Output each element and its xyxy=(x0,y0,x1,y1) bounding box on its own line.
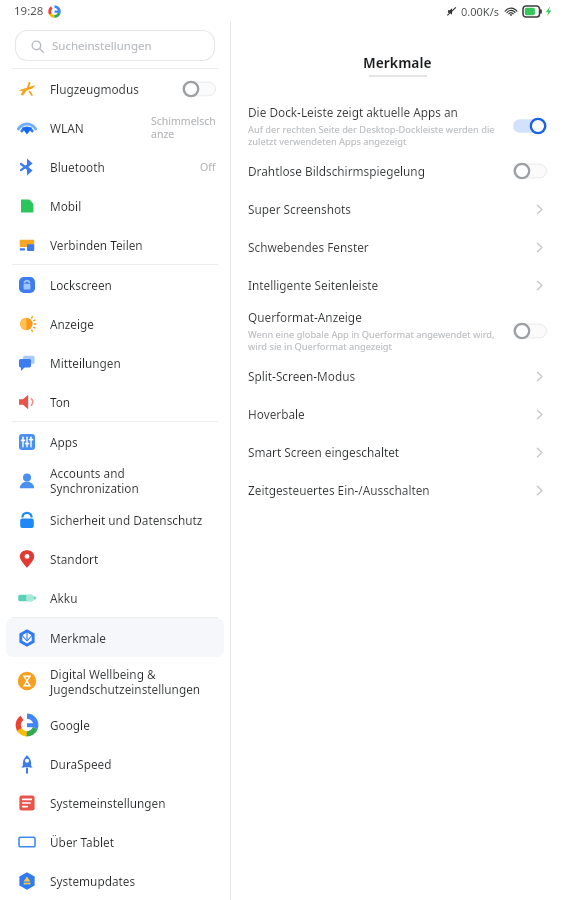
other: Open xyxy=(532,202,547,217)
staticText: Hoverbale xyxy=(248,406,305,422)
staticText: Merkmale xyxy=(50,630,106,646)
button[interactable]: Apps xyxy=(6,422,224,461)
staticText: Accounts and Synchronization xyxy=(50,465,216,496)
button[interactable]: Super Screenshots xyxy=(231,190,563,228)
staticText: Flugzeugmodus xyxy=(50,81,139,97)
button[interactable]: Flugzeugmodus xyxy=(6,69,224,108)
button[interactable]: Systemupdates xyxy=(6,861,224,900)
button[interactable]: Mobil xyxy=(6,186,224,225)
button[interactable]: WLAN xyxy=(6,108,224,147)
button[interactable]: Hoverbale xyxy=(231,395,563,433)
button[interactable]: Standort xyxy=(6,539,224,578)
staticText: Akku xyxy=(50,590,78,606)
staticText: WLAN xyxy=(50,120,84,136)
staticText: Sucheinstellungen xyxy=(52,38,152,54)
other: Open xyxy=(532,240,547,255)
button[interactable]: DuraSpeed xyxy=(6,744,224,783)
staticText: Ton xyxy=(50,394,71,410)
staticText: DuraSpeed xyxy=(50,756,112,772)
staticText: Sicherheit und Datenschutz xyxy=(50,512,203,528)
staticText: Mobil xyxy=(50,198,82,214)
staticText: Drahtlose Bildschirmspiegelung xyxy=(248,163,425,179)
staticText: Querformat-Anzeige xyxy=(248,309,362,325)
button[interactable]: Intelligente Seitenleiste xyxy=(231,266,563,304)
staticText: 19:28 xyxy=(14,3,44,19)
staticText: Smart Screen eingeschaltet xyxy=(248,444,400,460)
staticText: 0.00K/s xyxy=(461,4,499,19)
staticText: Merkmale xyxy=(363,54,432,72)
staticText: Mitteilungen xyxy=(50,355,121,371)
button[interactable]: Ton xyxy=(6,382,224,421)
button[interactable]: Accounts and Synchronization xyxy=(6,461,224,500)
staticText: Über Tablet xyxy=(50,834,114,850)
button[interactable]: Bluetooth xyxy=(6,147,224,186)
button[interactable]: Schwebendes Fenster xyxy=(231,228,563,266)
other: Open xyxy=(532,369,547,384)
staticText: Verbinden Teilen xyxy=(50,237,143,253)
staticText: Wenn eine globale App in Querformat ange… xyxy=(248,328,495,353)
button[interactable]: Zeitgesteuertes Ein-/Ausschalten xyxy=(231,471,563,509)
staticText: Apps xyxy=(50,434,78,450)
other: Open xyxy=(532,445,547,460)
other: Open xyxy=(532,278,547,293)
staticText: Digital Wellbeing & Jugendschutzeinstell… xyxy=(50,666,201,697)
button[interactable]: Akku xyxy=(6,578,224,617)
staticText: Schimmelsch anze xyxy=(151,114,216,141)
staticText: Systemupdates xyxy=(50,873,136,889)
staticText: Schwebendes Fenster xyxy=(248,239,369,255)
button[interactable]: Systemeinstellungen xyxy=(6,783,224,822)
staticText: Die Dock-Leiste zeigt aktuelle Apps an xyxy=(248,104,458,120)
button[interactable]: Mitteilungen xyxy=(6,343,224,382)
button[interactable]: Querformat-Anzeige xyxy=(231,304,563,357)
staticText: Off xyxy=(200,160,216,174)
other: Open xyxy=(532,483,547,498)
other: Open xyxy=(532,407,547,422)
button[interactable]: Merkmale xyxy=(6,618,224,657)
button[interactable]: Split-Screen-Modus xyxy=(231,357,563,395)
button[interactable]: Google xyxy=(6,705,224,744)
button[interactable]: Sucheinstellungen xyxy=(15,30,215,61)
button[interactable]: Anzeige xyxy=(6,304,224,343)
staticText: Auf der rechten Seite der Desktop-Dockle… xyxy=(248,123,495,148)
button[interactable]: Digital Wellbeing & Jugendschutzeinstell… xyxy=(6,657,224,705)
staticText: Anzeige xyxy=(50,316,94,332)
staticText: Intelligente Seitenleiste xyxy=(248,277,379,293)
button[interactable]: Sicherheit und Datenschutz xyxy=(6,500,224,539)
button[interactable]: Verbinden Teilen xyxy=(6,225,224,264)
staticText: Bluetooth xyxy=(50,159,105,175)
button[interactable]: Drahtlose Bildschirmspiegelung xyxy=(231,152,563,190)
staticText: Split-Screen-Modus xyxy=(248,368,356,384)
button[interactable]: Smart Screen eingeschaltet xyxy=(231,433,563,471)
button[interactable]: Die Dock-Leiste zeigt aktuelle Apps an xyxy=(231,99,563,152)
staticText: Google xyxy=(50,717,90,733)
staticText: Lockscreen xyxy=(50,277,112,293)
staticText: Zeitgesteuertes Ein-/Ausschalten xyxy=(248,482,430,498)
staticText: Systemeinstellungen xyxy=(50,795,166,811)
staticText: Standort xyxy=(50,551,99,567)
button[interactable]: Lockscreen xyxy=(6,265,224,304)
staticText: Super Screenshots xyxy=(248,201,351,217)
button[interactable]: Über Tablet xyxy=(6,822,224,861)
